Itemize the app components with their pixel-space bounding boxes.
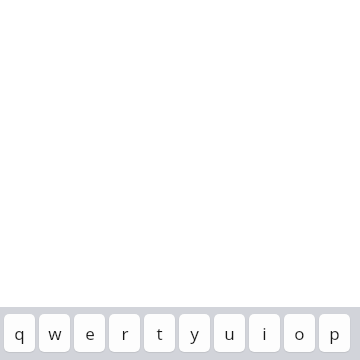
button[interactable]: w: [39, 314, 70, 352]
button[interactable]: y: [179, 314, 210, 352]
staticText: u: [224, 322, 235, 345]
staticText: r: [121, 322, 129, 345]
staticText: w: [48, 322, 62, 345]
staticText: i: [262, 322, 267, 345]
staticText: t: [156, 322, 163, 345]
staticText: q: [14, 322, 25, 345]
button[interactable]: i: [249, 314, 280, 352]
button[interactable]: e: [74, 314, 105, 352]
button[interactable]: t: [144, 314, 175, 352]
staticText: y: [190, 322, 199, 345]
staticText: o: [294, 322, 305, 345]
staticText: e: [85, 322, 95, 345]
button[interactable]: p: [319, 314, 350, 352]
button[interactable]: u: [214, 314, 245, 352]
button[interactable]: o: [284, 314, 315, 352]
button[interactable]: q: [4, 314, 35, 352]
staticText: p: [329, 322, 340, 345]
button[interactable]: r: [109, 314, 140, 352]
